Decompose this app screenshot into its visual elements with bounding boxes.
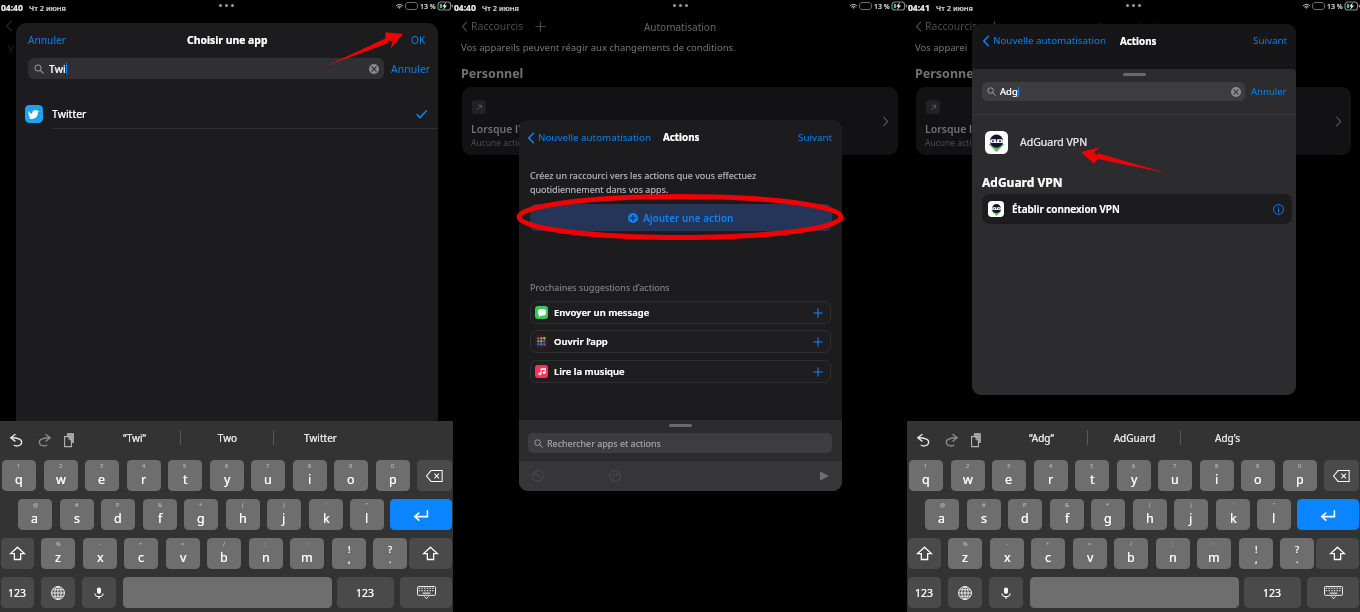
button[interactable]: AdGuard VPN [972,123,1296,161]
button[interactable]: Suivant [1249,30,1292,51]
button[interactable]: 4 [127,460,161,491]
button[interactable]: Backspace [1324,460,1359,491]
button[interactable]: @ [18,499,52,530]
button[interactable]: 8 [1200,460,1234,491]
button[interactable]: Twi [28,58,384,79]
staticText: 04:40 [454,2,476,14]
button[interactable]: Envoyer un message [530,301,831,324]
button[interactable]: Nouvelle automatisation [980,30,1109,51]
button[interactable]: 2 [44,460,78,491]
button[interactable]: " [350,499,384,530]
button[interactable]: 9 [1241,460,1275,491]
button[interactable]: OK [399,26,438,54]
button[interactable]: / [207,538,241,569]
button[interactable]: Return [390,499,452,530]
button[interactable]: P [1008,499,1042,530]
button[interactable]: 7 [1158,460,1192,491]
button[interactable]: & [1050,499,1084,530]
button[interactable]: ! [1239,538,1273,569]
button[interactable]: 5 [168,460,202,491]
button[interactable]: Twitter [16,97,438,131]
button[interactable]: / [1114,538,1148,569]
button[interactable]: Hide keyboard [1307,577,1359,608]
button[interactable]: + [1031,538,1065,569]
button[interactable]: P [101,499,135,530]
button[interactable]: ? [1280,538,1314,569]
button[interactable]: Dictate [82,577,116,608]
button[interactable]: ; [1156,538,1190,569]
staticText: l [365,510,369,527]
button[interactable]: Language [41,577,75,608]
button[interactable]: 1 [2,460,36,491]
staticText: ! [348,543,351,556]
button[interactable]: * [1091,499,1125,530]
button[interactable]: 3 [992,460,1026,491]
button[interactable]: 0 [376,460,410,491]
button[interactable]: - [83,538,117,569]
button[interactable]: Ouvrir l’app [530,330,831,353]
button[interactable]: ’ [309,499,343,530]
button[interactable]: Annuler [16,26,78,54]
button[interactable]: 6 [210,460,244,491]
button[interactable]: Return [1297,499,1359,530]
button[interactable]: Numbers [908,577,941,608]
button[interactable]: Annuler [391,62,431,76]
button[interactable]: Lire la musique [530,360,831,383]
button[interactable]: = [166,538,200,569]
button[interactable]: 4 [1034,460,1068,491]
button[interactable]: Dictate [989,577,1023,608]
button[interactable]: ? [373,538,407,569]
button[interactable]: ; [249,538,283,569]
button[interactable]: - [990,538,1024,569]
button[interactable]: Rechercher apps et actions [528,433,832,453]
button[interactable]: 5 [1075,460,1109,491]
button[interactable]: Shift [1316,538,1359,569]
button[interactable]: ! [332,538,366,569]
button[interactable]: = [1073,538,1107,569]
button[interactable]: 2 [951,460,985,491]
button[interactable]: + [124,538,158,569]
button[interactable]: Établir connexion VPN [982,194,1292,224]
button[interactable]: Shift [409,538,452,569]
staticText: Чт 2 июня [482,3,519,13]
button[interactable]: Numbers [337,577,394,608]
button[interactable]: Shift [908,538,941,569]
button[interactable]: % [41,538,75,569]
button[interactable]: 6 [1117,460,1151,491]
button[interactable]: Nouvelle automatisation [519,124,660,151]
button[interactable]: # [967,499,1001,530]
button[interactable]: ) [1174,499,1208,530]
button[interactable]: " [1257,499,1291,530]
button[interactable]: 9 [334,460,368,491]
button[interactable]: : [290,538,324,569]
button[interactable]: 7 [251,460,285,491]
button[interactable]: * [184,499,218,530]
button[interactable]: 0 [1283,460,1317,491]
staticText: b [1127,549,1135,566]
button[interactable]: Language [948,577,982,608]
button[interactable]: Backspace [417,460,452,491]
button[interactable]: Adg [982,82,1245,101]
button[interactable]: Numbers [1,577,34,608]
button[interactable]: ( [226,499,260,530]
button[interactable]: % [948,538,982,569]
button[interactable]: & [143,499,177,530]
button[interactable]: Suivant [789,124,842,151]
button[interactable]: ) [267,499,301,530]
button[interactable]: @ [925,499,959,530]
button[interactable]: Shift [1,538,34,569]
button[interactable]: 3 [85,460,119,491]
button[interactable]: Ajouter une action [530,204,832,231]
button[interactable]: 8 [293,460,327,491]
button[interactable]: Hide keyboard [400,577,452,608]
button[interactable]: 1 [909,460,943,491]
staticText: h [1146,510,1154,527]
button[interactable]: ( [1133,499,1167,530]
button[interactable]: Annuler [1251,85,1287,98]
button[interactable]: ’ [1216,499,1250,530]
button[interactable]: # [60,499,94,530]
button[interactable]: Numbers [1244,577,1301,608]
button[interactable]: : [1197,538,1231,569]
